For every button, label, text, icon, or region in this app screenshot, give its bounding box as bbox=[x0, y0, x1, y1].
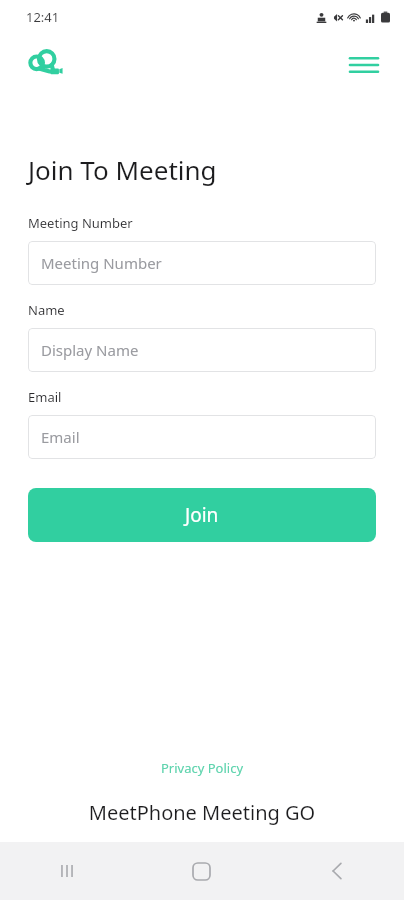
staticText: Name bbox=[28, 301, 65, 319]
staticText: Display Name bbox=[41, 340, 139, 360]
button[interactable]: Open menu bbox=[342, 43, 386, 87]
staticText: Join To Meeting bbox=[28, 152, 217, 187]
staticText: Meeting Number bbox=[28, 214, 133, 232]
button[interactable]: MeetPhone logo bbox=[22, 41, 70, 89]
button[interactable]: Meeting Number bbox=[28, 241, 376, 285]
staticText: Join bbox=[185, 502, 219, 528]
button[interactable]: Home bbox=[134, 842, 269, 900]
button[interactable]: Display Name bbox=[28, 328, 376, 372]
staticText: Meeting Number bbox=[41, 253, 162, 273]
button[interactable]: Join bbox=[28, 488, 376, 542]
staticText: Email bbox=[28, 388, 62, 406]
button[interactable]: Privacy Policy bbox=[0, 755, 404, 781]
button[interactable]: Email bbox=[28, 415, 376, 459]
staticText: Email bbox=[41, 427, 80, 447]
button[interactable]: Recent apps bbox=[0, 842, 134, 900]
staticText: MeetPhone Meeting GO bbox=[0, 799, 404, 826]
button[interactable]: Back bbox=[269, 842, 404, 900]
staticText: 12:41 bbox=[26, 8, 60, 26]
